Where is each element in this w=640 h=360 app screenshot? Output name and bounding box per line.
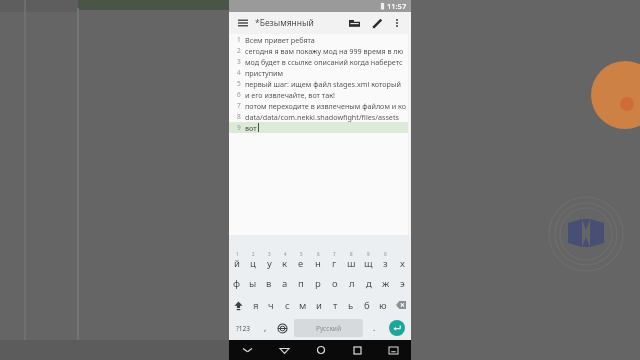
button[interactable]: 8 xyxy=(343,248,360,272)
button[interactable]: ?123 xyxy=(229,316,257,340)
button[interactable]: Enter xyxy=(389,320,405,336)
staticText: 8 xyxy=(237,112,241,121)
button[interactable]: ь xyxy=(343,294,359,316)
button[interactable]: , xyxy=(257,316,273,340)
button[interactable]: л xyxy=(343,272,360,294)
button[interactable]: р xyxy=(309,272,326,294)
staticText: 7 xyxy=(237,101,241,110)
staticText: б xyxy=(364,299,370,312)
button[interactable]: д xyxy=(360,272,377,294)
button[interactable]: в xyxy=(261,272,277,294)
staticText: р xyxy=(315,277,321,290)
staticText: з xyxy=(383,257,388,270)
staticText: й xyxy=(234,257,240,270)
staticText: ?123 xyxy=(236,324,250,333)
button[interactable]: п xyxy=(293,272,309,294)
button[interactable]: Menu xyxy=(235,15,251,31)
staticText: ш xyxy=(347,257,356,270)
button[interactable]: 0 xyxy=(377,248,394,272)
button[interactable]: 5 xyxy=(293,248,309,272)
button[interactable]: а xyxy=(277,272,293,294)
staticText: к xyxy=(282,257,288,270)
button[interactable]: 6 xyxy=(309,248,326,272)
staticText: сегодня я вам покажу мод на 999 время в … xyxy=(245,46,404,56)
button[interactable]: Home xyxy=(303,340,339,360)
staticText: я xyxy=(253,299,259,312)
button[interactable]: Change language xyxy=(273,316,291,340)
staticText: Русский xyxy=(316,324,341,333)
staticText: щ xyxy=(364,257,373,270)
button[interactable]: Open file xyxy=(345,14,363,32)
button[interactable]: Shift xyxy=(229,294,248,316)
staticText: 1 xyxy=(237,35,241,44)
button[interactable]: т xyxy=(327,294,343,316)
button[interactable]: Русский xyxy=(294,319,363,337)
staticText: 3 xyxy=(268,251,271,257)
button[interactable]: 9 xyxy=(360,248,377,272)
button[interactable]: Backspace xyxy=(391,294,411,316)
button[interactable]: ф xyxy=(229,272,245,294)
button[interactable]: с xyxy=(279,294,295,316)
staticText: н xyxy=(315,257,321,270)
staticText: Всем привет ребята xyxy=(245,35,315,45)
staticText: 6 xyxy=(237,90,241,99)
staticText: ц xyxy=(250,257,256,270)
staticText: 9 xyxy=(367,251,370,257)
staticText: 4 xyxy=(284,251,287,257)
staticText: первый шаг: ищем файл stages.xml который xyxy=(245,79,401,89)
staticText: data/data/com.nekki.shadowfight/files/as… xyxy=(245,112,399,122)
staticText: г xyxy=(332,257,337,270)
button[interactable]: Recent apps xyxy=(339,340,375,360)
button[interactable]: ч xyxy=(263,294,279,316)
button[interactable]: Switch keyboard xyxy=(375,340,411,360)
staticText: 2 xyxy=(237,46,241,55)
staticText: м xyxy=(299,299,307,312)
staticText: ы xyxy=(249,277,257,290)
staticText: *Безымянный xyxy=(255,17,314,29)
staticText: мод будет в ссылке описаний когда набере… xyxy=(245,57,403,67)
button[interactable]: 2 xyxy=(245,248,261,272)
staticText: с xyxy=(285,299,290,312)
button[interactable]: 4 xyxy=(277,248,293,272)
button[interactable]: 7 xyxy=(326,248,343,272)
staticText: 7 xyxy=(333,251,336,257)
staticText: . xyxy=(373,322,376,334)
staticText: 5 xyxy=(237,79,241,88)
button[interactable]: Edit xyxy=(368,14,386,32)
button[interactable]: я xyxy=(248,294,263,316)
button[interactable]: ж xyxy=(377,272,394,294)
staticText: х xyxy=(400,257,405,270)
button[interactable]: ю xyxy=(375,294,391,316)
button[interactable]: х xyxy=(394,248,411,272)
button[interactable]: 3 xyxy=(261,248,277,272)
staticText: 2 xyxy=(252,251,255,257)
staticText: 1 xyxy=(236,251,239,257)
staticText: 11:57 xyxy=(387,1,407,11)
staticText: ж xyxy=(382,277,390,290)
button[interactable]: More options xyxy=(389,15,405,31)
staticText: а xyxy=(282,277,288,290)
staticText: потом переходите в извлеченым файлом и к… xyxy=(245,101,407,111)
button[interactable]: м xyxy=(295,294,311,316)
button[interactable]: э xyxy=(394,272,411,294)
button[interactable]: Back xyxy=(266,340,303,360)
staticText: 9 xyxy=(237,123,241,132)
staticText: п xyxy=(298,277,304,290)
button[interactable]: б xyxy=(359,294,375,316)
staticText: т xyxy=(333,299,338,312)
button[interactable]: 1 xyxy=(229,248,245,272)
button[interactable]: ы xyxy=(245,272,261,294)
button[interactable]: о xyxy=(326,272,343,294)
button[interactable]: . xyxy=(366,316,382,340)
staticText: в xyxy=(266,277,272,290)
staticText: 3 xyxy=(237,57,241,66)
staticText: ф xyxy=(233,277,241,290)
staticText: ю xyxy=(379,299,387,312)
button[interactable]: и xyxy=(311,294,327,316)
staticText: о xyxy=(332,277,338,290)
staticText: 5 xyxy=(300,251,303,257)
button[interactable]: Hide keyboard xyxy=(229,340,266,360)
staticText: вот xyxy=(245,123,257,133)
staticText: е xyxy=(298,257,304,270)
staticText: 0 xyxy=(384,251,387,257)
